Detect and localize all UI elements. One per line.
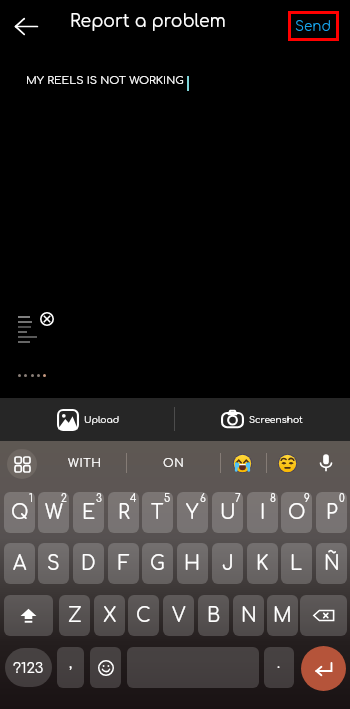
staticText: 2 bbox=[61, 493, 67, 504]
staticText: K bbox=[256, 553, 269, 574]
staticText: F bbox=[118, 553, 130, 574]
button[interactable]: F bbox=[108, 543, 139, 584]
staticText: Report a problem bbox=[70, 12, 226, 31]
button[interactable]: Send bbox=[288, 11, 339, 41]
button[interactable]: Pensive face bbox=[278, 454, 297, 473]
staticText: S bbox=[47, 553, 60, 574]
button[interactable]: T bbox=[142, 492, 173, 533]
staticText: W bbox=[45, 502, 63, 523]
button[interactable]: R bbox=[108, 492, 139, 533]
button[interactable]: U bbox=[212, 492, 243, 533]
staticText: Q bbox=[11, 502, 29, 523]
button[interactable]: P bbox=[316, 492, 347, 533]
staticText: H bbox=[184, 553, 201, 574]
staticText: P bbox=[326, 502, 338, 523]
staticText: Z bbox=[68, 605, 82, 626]
staticText: Send bbox=[295, 19, 332, 34]
button[interactable]: ON bbox=[142, 441, 206, 486]
staticText: 9 bbox=[304, 493, 310, 504]
button[interactable]: . bbox=[264, 647, 294, 688]
button[interactable]: Remove attachment bbox=[40, 312, 54, 326]
button[interactable]: Screenshot bbox=[221, 398, 303, 441]
button[interactable]: Ñ bbox=[316, 543, 347, 584]
button[interactable]: Back bbox=[8, 8, 45, 45]
staticText: 0 bbox=[339, 493, 345, 504]
button[interactable]: N bbox=[233, 595, 264, 636]
button[interactable]: A bbox=[4, 543, 35, 584]
staticText: 3 bbox=[96, 493, 102, 504]
button[interactable]: Emoji bbox=[90, 647, 121, 688]
button[interactable]: S bbox=[38, 543, 69, 584]
staticText: C bbox=[136, 605, 151, 626]
button[interactable]: Enter bbox=[301, 646, 346, 691]
button[interactable]: Keyboard menu bbox=[7, 449, 37, 479]
button[interactable]: B bbox=[198, 595, 229, 636]
staticText: L bbox=[290, 553, 303, 574]
button[interactable]: Upload bbox=[57, 398, 120, 441]
button[interactable]: Y bbox=[177, 492, 208, 533]
staticText: . bbox=[277, 656, 281, 672]
button[interactable]: L bbox=[281, 543, 312, 584]
staticText: WITH bbox=[68, 457, 102, 470]
button[interactable]: , bbox=[57, 647, 84, 688]
button[interactable]: M bbox=[267, 595, 298, 636]
button[interactable]: J bbox=[212, 543, 243, 584]
button[interactable]: Shift bbox=[4, 595, 53, 636]
button[interactable]: WITH bbox=[50, 441, 120, 486]
button[interactable]: E bbox=[73, 492, 104, 533]
button[interactable]: W bbox=[38, 492, 69, 533]
button[interactable]: C bbox=[128, 595, 159, 636]
staticText: J bbox=[222, 553, 234, 574]
staticText: M bbox=[273, 605, 292, 626]
staticText: Upload bbox=[84, 415, 120, 425]
staticText: A bbox=[13, 553, 27, 574]
button[interactable]: V bbox=[163, 595, 194, 636]
staticText: B bbox=[207, 605, 221, 626]
button[interactable]: Space bbox=[127, 647, 259, 688]
button[interactable]: D bbox=[73, 543, 104, 584]
staticText: 7 bbox=[235, 493, 241, 504]
staticText: Y bbox=[186, 502, 199, 523]
staticText: E bbox=[82, 502, 96, 523]
button[interactable]: I bbox=[247, 492, 278, 533]
staticText: Screenshot bbox=[249, 415, 303, 425]
button[interactable]: Voice input bbox=[315, 452, 337, 474]
staticText: ?123 bbox=[13, 660, 44, 676]
staticText: Ñ bbox=[324, 553, 340, 574]
button[interactable]: Q bbox=[4, 492, 35, 533]
staticText: 8 bbox=[270, 493, 276, 504]
staticText: U bbox=[220, 502, 236, 523]
button[interactable]: X bbox=[94, 595, 125, 636]
staticText: V bbox=[172, 605, 186, 626]
button[interactable]: Loudly crying face bbox=[233, 454, 252, 473]
staticText: 6 bbox=[200, 493, 206, 504]
staticText: I bbox=[260, 502, 266, 523]
button[interactable]: Backspace bbox=[300, 595, 347, 636]
staticText: G bbox=[150, 553, 165, 574]
staticText: R bbox=[118, 502, 130, 523]
staticText: MY REELS IS NOT WORKING bbox=[26, 74, 184, 86]
staticText: ON bbox=[163, 457, 185, 470]
button[interactable]: H bbox=[177, 543, 208, 584]
button[interactable]: K bbox=[247, 543, 278, 584]
button[interactable]: Z bbox=[59, 595, 90, 636]
staticText: 5 bbox=[164, 493, 171, 504]
staticText: 1 bbox=[29, 493, 33, 504]
staticText: , bbox=[69, 656, 73, 672]
button[interactable]: G bbox=[142, 543, 173, 584]
staticText: D bbox=[81, 553, 96, 574]
button[interactable]: O bbox=[281, 492, 312, 533]
staticText: X bbox=[103, 605, 117, 626]
staticText: T bbox=[151, 502, 164, 523]
button[interactable]: ?123 bbox=[5, 648, 52, 687]
staticText: 4 bbox=[130, 493, 137, 504]
staticText: O bbox=[288, 502, 306, 523]
staticText: N bbox=[241, 605, 257, 626]
